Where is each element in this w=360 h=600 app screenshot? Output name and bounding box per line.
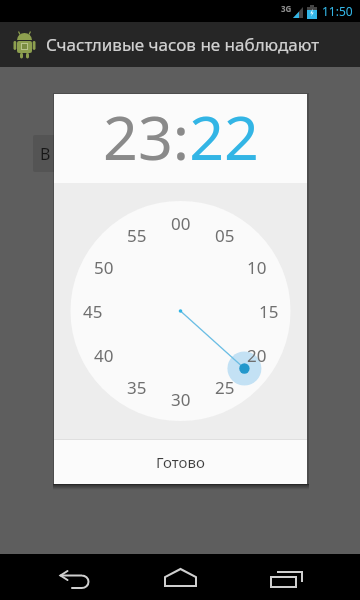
staticText: Счастливые часов не наблюдают: [46, 33, 320, 56]
staticText: 30: [171, 388, 191, 410]
staticText: 20: [247, 344, 267, 366]
staticText: 05: [215, 224, 235, 246]
button[interactable]: [44, 554, 104, 600]
staticText: В: [40, 143, 51, 165]
staticText: Готово: [156, 452, 205, 472]
staticText: 50: [94, 256, 114, 278]
staticText: 25: [215, 376, 235, 398]
staticText: 45: [83, 300, 103, 322]
staticText: 55: [127, 224, 147, 246]
staticText: 35: [127, 376, 147, 398]
staticText: 23:22: [103, 95, 259, 178]
staticText: 3G: [281, 3, 292, 14]
button[interactable]: Готово: [54, 440, 307, 484]
staticText: 11:50: [322, 3, 353, 19]
button[interactable]: [256, 554, 316, 600]
staticText: 10: [247, 256, 267, 278]
staticText: 40: [94, 344, 114, 366]
staticText: 15: [259, 300, 279, 322]
staticText: 00: [171, 212, 191, 234]
button[interactable]: [150, 554, 210, 600]
